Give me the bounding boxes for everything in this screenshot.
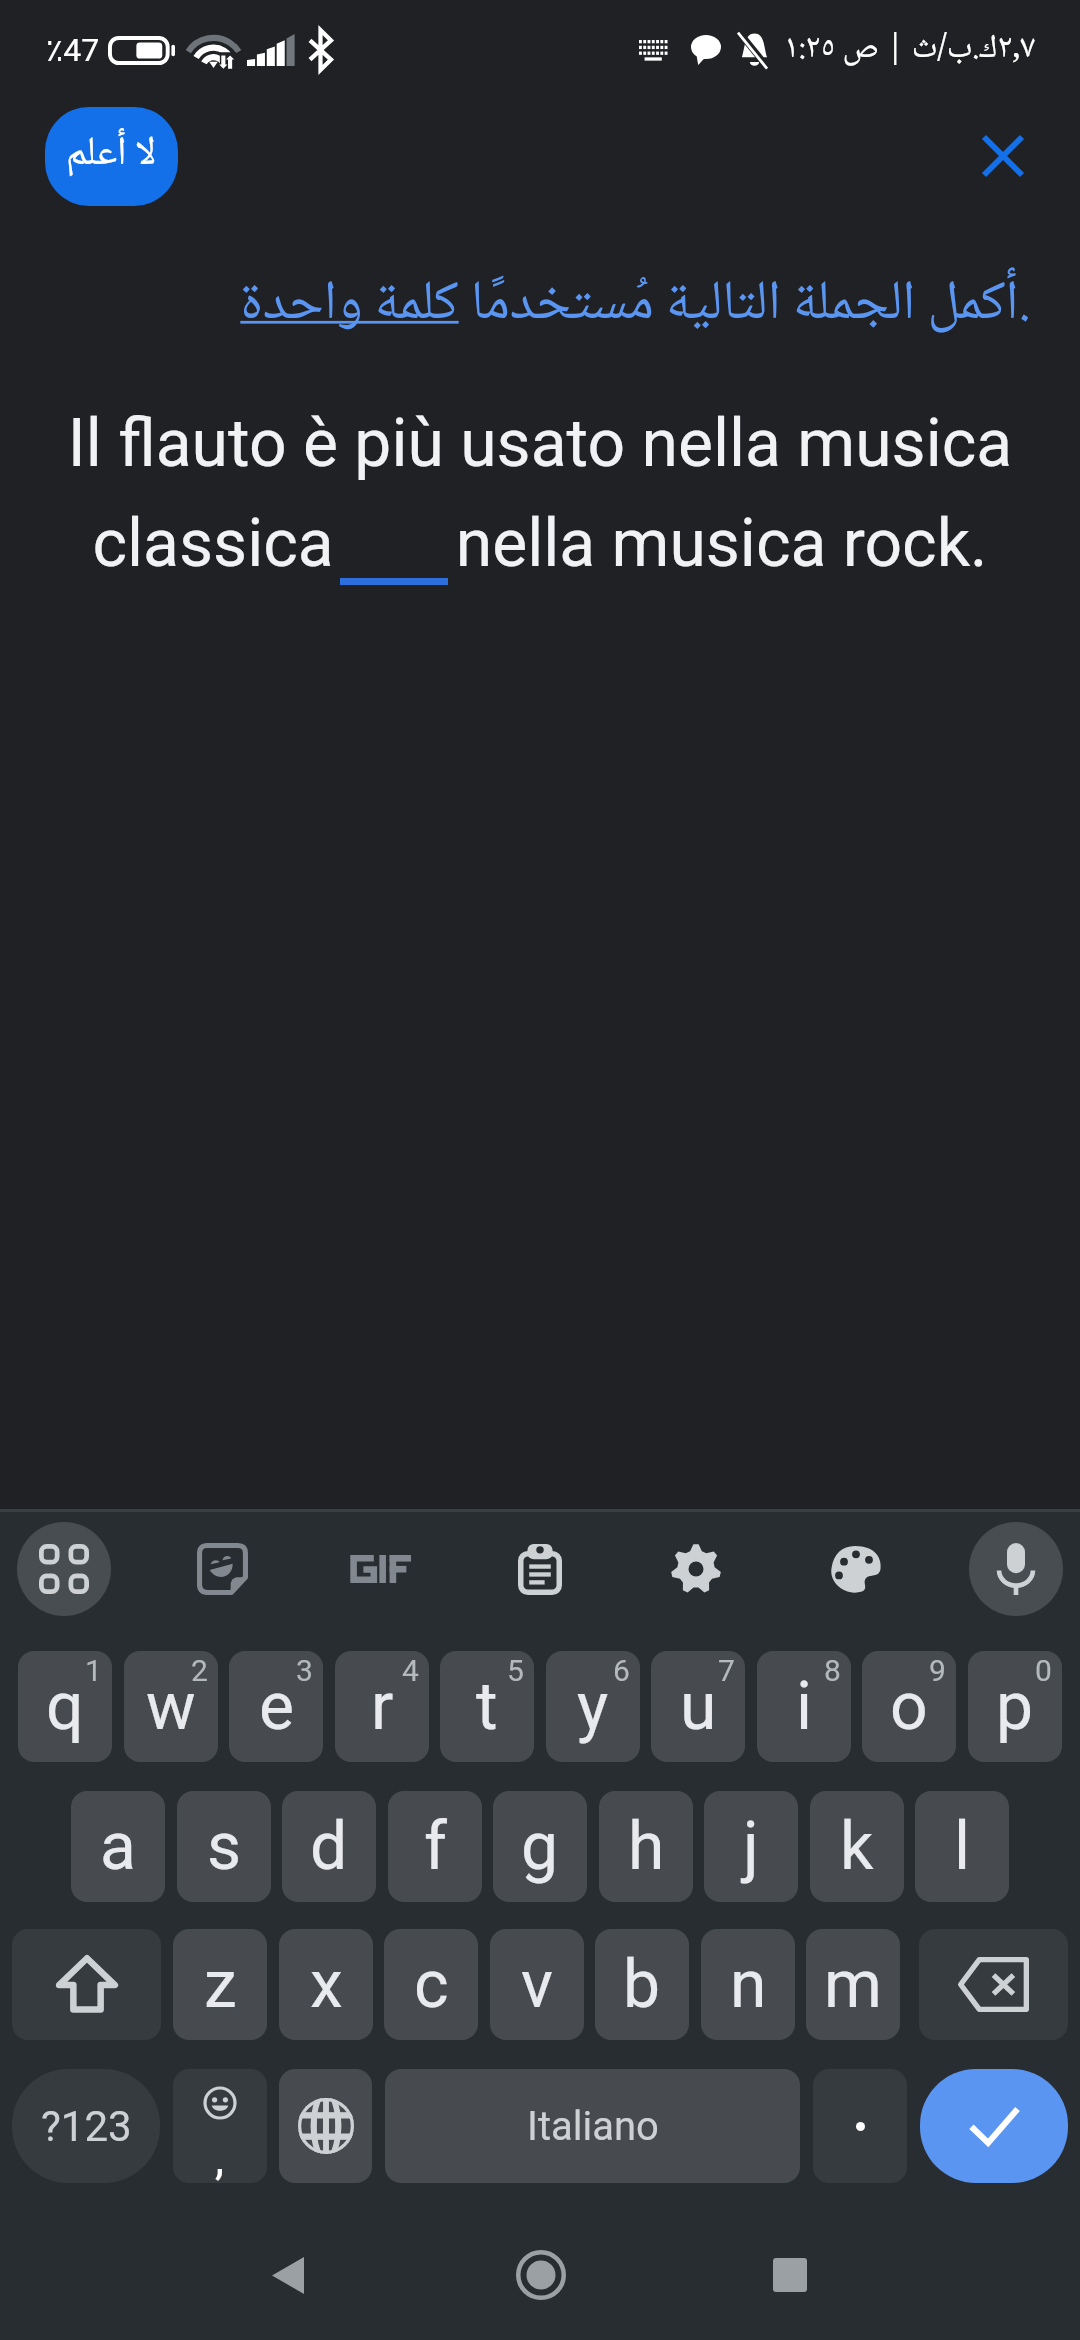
staticText: u [680,1668,717,1745]
button[interactable]: x [279,1929,373,2040]
staticText: 3 [296,1653,313,1688]
button[interactable]: d [282,1791,376,1902]
button[interactable]: Settings [649,1522,743,1616]
staticText: w [146,1668,196,1745]
button[interactable]: t [440,1651,534,1762]
button[interactable]: GIF [333,1522,427,1616]
staticText: b [623,1946,661,2023]
staticText: 5 [507,1653,524,1688]
button[interactable]: o [862,1651,956,1762]
button[interactable]: Emoji [173,2069,267,2183]
button[interactable]: q [18,1651,112,1762]
staticText: l [954,1808,971,1885]
staticText: ?123 [41,2102,132,2151]
button[interactable]: v [490,1929,584,2040]
staticText: 0 [1035,1653,1052,1688]
staticText: ٪47 [46,31,100,69]
button[interactable]: Home [481,2228,601,2322]
button[interactable]: e [229,1651,323,1762]
button[interactable]: ?123 [12,2069,160,2183]
staticText: n [730,1946,767,2023]
button[interactable]: Voice input [969,1522,1063,1616]
staticText: m [824,1946,882,2023]
staticText: y [577,1668,609,1745]
staticText: g [521,1808,559,1885]
staticText: k [840,1808,874,1885]
staticText: d [310,1808,348,1885]
button[interactable]: f [388,1791,482,1902]
button[interactable]: Enter [920,2069,1068,2183]
button[interactable]: u [651,1651,745,1762]
staticText: v [521,1946,553,2023]
staticText: f [424,1808,447,1885]
staticText: 2 [191,1653,208,1688]
staticText: 6 [613,1653,630,1688]
staticText: , [215,2131,225,2183]
button[interactable]: l [915,1791,1009,1902]
button[interactable]: Shift [12,1929,161,2040]
staticText: o [890,1668,928,1745]
staticText: ٢,٧ك.ب/ث | ص ١:٢٥ [784,22,1036,78]
button[interactable]: h [599,1791,693,1902]
button[interactable]: a [71,1791,165,1902]
button[interactable]: w [124,1651,218,1762]
button[interactable]: n [701,1929,795,2040]
button[interactable]: لا أعلم [45,107,178,206]
button[interactable]: s [177,1791,271,1902]
button[interactable]: p [968,1651,1062,1762]
button[interactable]: k [810,1791,904,1902]
button[interactable]: b [595,1929,689,2040]
button[interactable]: j [704,1791,798,1902]
button[interactable]: Italiano [385,2069,800,2183]
staticText: j [743,1808,759,1885]
staticText: p [996,1668,1034,1745]
button[interactable]: Apps [17,1522,111,1616]
button[interactable]: Recents [730,2228,850,2322]
button[interactable]: Change language [279,2069,372,2183]
staticText: q [46,1668,84,1745]
staticText: c [414,1946,449,2023]
button[interactable]: Backspace [919,1929,1068,2040]
button[interactable]: Period [813,2069,907,2183]
button[interactable]: m [806,1929,900,2040]
button[interactable]: y [546,1651,640,1762]
staticText: s [207,1808,242,1885]
staticText: r [371,1668,394,1745]
staticText: Il flauto è più usato nella musica class… [30,405,1050,582]
staticText: 9 [929,1653,946,1688]
staticText: أكمل الجملة التالية مُستخدمًا كلمة واحدة… [0,259,1030,353]
button[interactable]: Clipboard [493,1522,587,1616]
staticText: 1 [85,1653,102,1688]
staticText: e [259,1668,294,1745]
staticText: x [310,1946,343,2023]
button[interactable]: Theme [809,1522,903,1616]
staticText: z [204,1946,237,2023]
button[interactable]: Back [228,2228,348,2322]
button[interactable]: r [335,1651,429,1762]
staticText: t [476,1668,498,1745]
staticText: 8 [824,1653,841,1688]
staticText: لا أعلم [66,121,157,189]
staticText: a [100,1808,136,1885]
staticText: Italiano [527,2103,659,2150]
staticText: h [628,1808,665,1885]
staticText: i [796,1668,813,1745]
button[interactable]: i [757,1651,851,1762]
staticText: 4 [402,1653,419,1688]
staticText: 7 [718,1653,735,1688]
button[interactable]: z [173,1929,267,2040]
button[interactable]: g [493,1791,587,1902]
button[interactable]: Stickers [175,1522,269,1616]
button[interactable]: c [384,1929,478,2040]
button[interactable]: Close [961,114,1045,198]
